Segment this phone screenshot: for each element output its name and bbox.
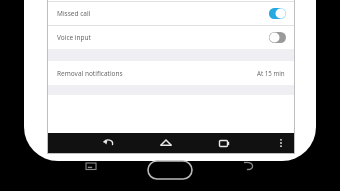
button[interactable]: Recents	[216, 135, 232, 151]
button[interactable]: Home	[158, 135, 174, 151]
button[interactable]: Voice input	[48, 26, 294, 49]
staticText: Missed call	[57, 9, 91, 18]
button[interactable]: Missed call	[48, 2, 294, 25]
button[interactable]: Toggle on	[269, 8, 286, 19]
button[interactable]: Toggle off	[269, 32, 286, 43]
button[interactable]: Back	[100, 135, 116, 151]
button[interactable]: Back	[242, 159, 256, 173]
staticText: Removal notifications	[57, 69, 123, 78]
button[interactable]: Recent apps	[84, 159, 98, 173]
staticText: Voice input	[57, 33, 91, 42]
button[interactable]: Removal notifications	[48, 61, 294, 85]
button[interactable]: More options	[274, 136, 288, 150]
staticText: At 15 min	[257, 69, 285, 77]
button[interactable]: Home	[148, 161, 192, 179]
